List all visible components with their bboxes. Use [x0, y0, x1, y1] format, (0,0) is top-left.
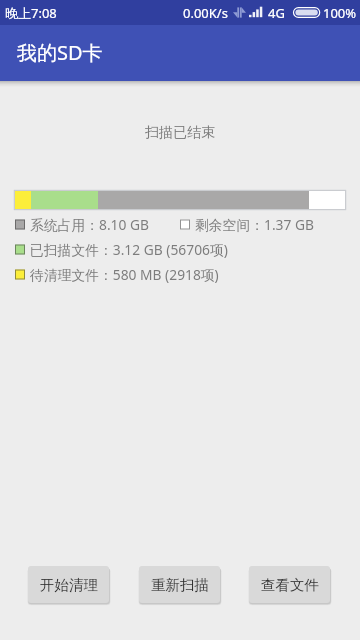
staticText: 剩余空间：1.37 GB	[195, 215, 314, 234]
staticText: 开始清理	[40, 576, 98, 594]
button[interactable]: 重新扫描	[139, 566, 220, 603]
staticText: 已扫描文件：3.12 GB (56706项)	[30, 240, 228, 259]
staticText: 重新扫描	[151, 576, 209, 594]
staticText: 晚上7:08	[5, 4, 57, 22]
staticText: 查看文件	[261, 576, 319, 594]
other: Data transfer	[233, 7, 245, 18]
button[interactable]: 开始清理	[28, 566, 109, 603]
staticText: 4G	[268, 4, 285, 22]
staticText: 系统占用：8.10 GB	[30, 215, 149, 234]
button[interactable]: 查看文件	[249, 566, 330, 603]
staticText: 我的SD卡	[17, 39, 103, 66]
other: Signal strength	[249, 7, 265, 18]
other: Battery 100%	[293, 7, 320, 18]
staticText: 扫描已结束	[145, 124, 215, 142]
staticText: 0.00K/s	[183, 4, 228, 22]
staticText: 待清理文件：580 MB (2918项)	[30, 265, 219, 284]
staticText: 100%	[323, 4, 357, 22]
